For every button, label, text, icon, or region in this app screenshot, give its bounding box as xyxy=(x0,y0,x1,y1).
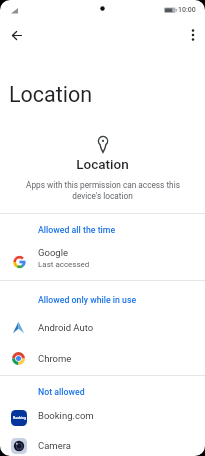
staticText: Location xyxy=(9,82,93,106)
staticText: Booking.com xyxy=(38,410,94,421)
staticText: Chrome xyxy=(38,353,72,364)
staticText: 10:00 xyxy=(178,6,196,14)
staticText: Android Auto xyxy=(38,322,94,333)
staticText: Not allowed xyxy=(38,387,85,397)
button[interactable] xyxy=(184,24,202,46)
staticText: Location xyxy=(76,156,129,172)
staticText: device's location xyxy=(72,191,133,201)
button[interactable]: Chrome xyxy=(0,342,205,374)
staticText: Camera xyxy=(38,440,71,451)
button[interactable]: Google xyxy=(0,242,205,274)
button[interactable] xyxy=(6,24,28,46)
button[interactable]: Booking xyxy=(0,399,205,431)
button[interactable]: Camera xyxy=(0,429,205,456)
staticText: Google xyxy=(38,247,68,258)
staticText: Last accessed xyxy=(38,260,90,269)
staticText: Booking xyxy=(13,416,26,420)
staticText: Allowed all the time xyxy=(38,225,116,235)
staticText: Apps with this permission can access thi… xyxy=(26,180,180,190)
staticText: Allowed only while in use xyxy=(38,295,137,305)
button[interactable]: Android Auto xyxy=(0,311,205,343)
